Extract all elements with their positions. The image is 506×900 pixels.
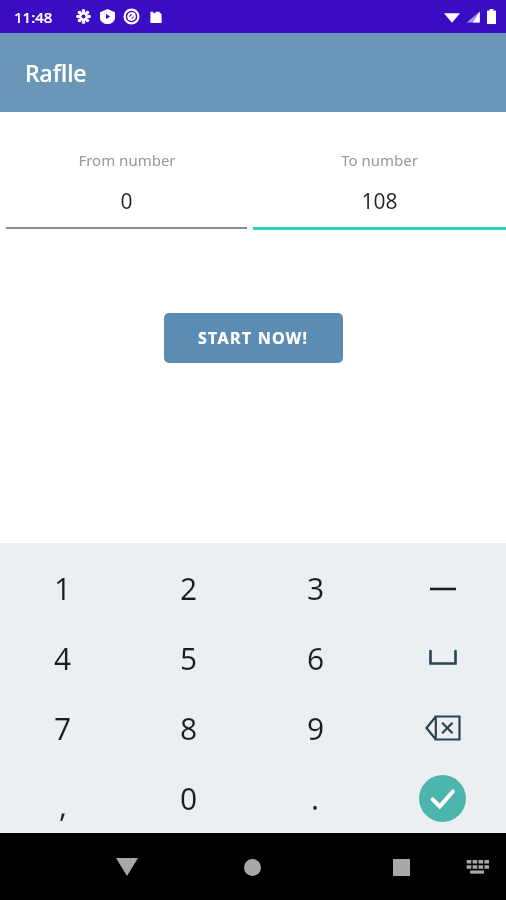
staticText: 7 — [54, 708, 72, 749]
button[interactable]: back — [379, 693, 506, 763]
button[interactable]: dash — [379, 554, 506, 623]
button[interactable]: enter — [379, 763, 506, 833]
staticText: . — [311, 778, 320, 819]
staticText: , — [59, 785, 68, 826]
button[interactable]: 1 — [0, 554, 126, 623]
button[interactable]: 0 — [126, 763, 252, 833]
staticText: 108 — [361, 187, 398, 216]
staticText: To number — [341, 150, 418, 170]
button[interactable]: 7 — [0, 693, 126, 763]
button[interactable]: Hide keyboard — [104, 844, 150, 890]
staticText: 9 — [307, 708, 325, 749]
button[interactable]: 9 — [252, 693, 379, 763]
button[interactable]: , — [0, 763, 126, 833]
button[interactable]: 8 — [126, 693, 252, 763]
staticText: Raflle — [25, 57, 87, 88]
staticText: 4 — [54, 638, 72, 679]
staticText: 0 — [180, 778, 198, 819]
staticText: 8 — [180, 708, 198, 749]
button[interactable]: . — [252, 763, 379, 833]
button[interactable]: 4 — [0, 623, 126, 693]
button[interactable]: Home — [229, 844, 275, 890]
staticText: From number — [78, 150, 176, 170]
button[interactable]: space — [379, 623, 506, 693]
staticText: START NOW! — [198, 327, 309, 349]
staticText: 6 — [307, 638, 325, 679]
button[interactable]: Recents — [378, 844, 424, 890]
button[interactable]: From number — [6, 150, 247, 229]
button[interactable]: 2 — [126, 554, 252, 623]
button[interactable]: 3 — [252, 554, 379, 623]
button[interactable]: To number — [253, 150, 506, 230]
staticText: 1 — [54, 568, 72, 609]
staticText: 5 — [180, 638, 198, 679]
button[interactable]: 6 — [252, 623, 379, 693]
button[interactable]: Switch keyboard — [458, 847, 498, 887]
staticText: 11:48 — [14, 7, 53, 27]
staticText: 0 — [120, 187, 133, 216]
staticText: 3 — [307, 568, 325, 609]
button[interactable]: 5 — [126, 623, 252, 693]
button[interactable]: START NOW! — [164, 313, 343, 363]
staticText: 2 — [180, 568, 198, 609]
